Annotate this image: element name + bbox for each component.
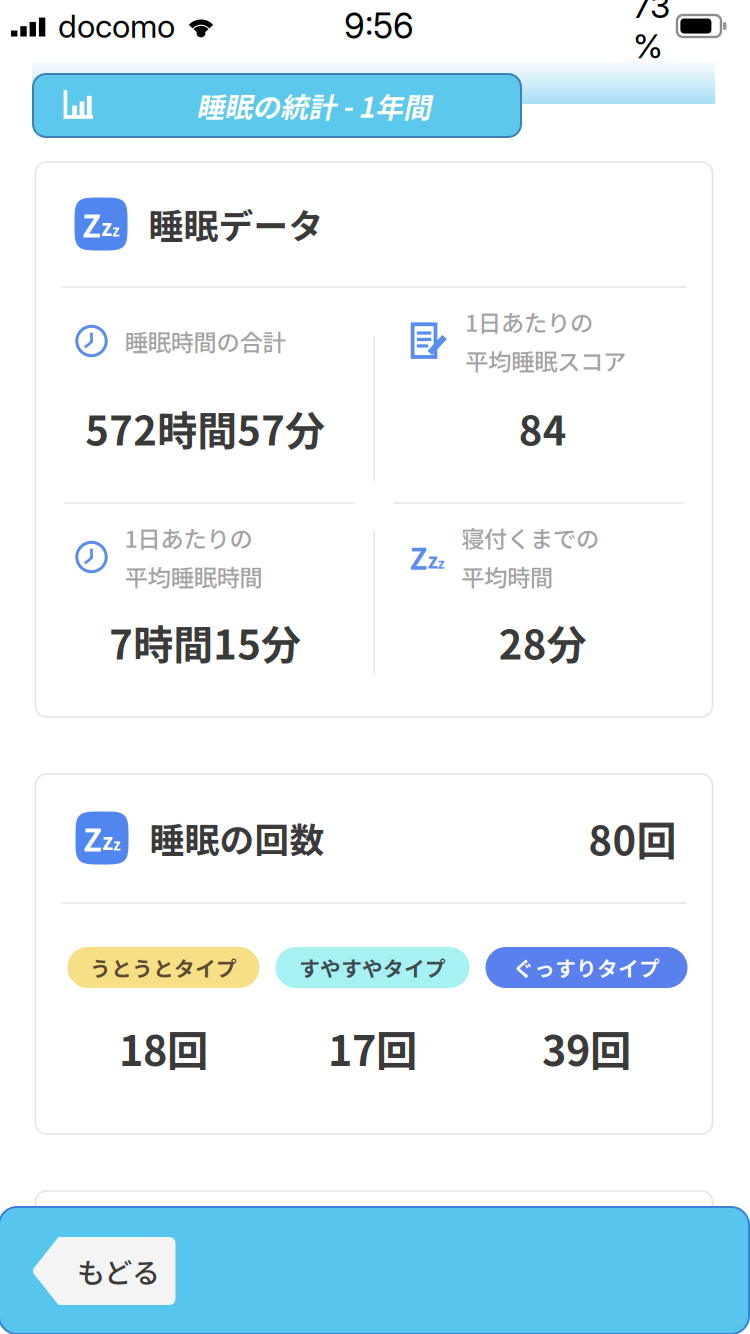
staticText: Z	[409, 536, 427, 578]
staticText: 1日あたりの	[124, 521, 252, 554]
staticText: z	[102, 825, 113, 856]
staticText: 睡眠の回数	[149, 813, 324, 863]
staticText: 572時間57分	[85, 399, 325, 457]
button[interactable]: もどる	[39, 1237, 183, 1305]
staticText: 1日あたりの	[465, 305, 593, 338]
staticText: 睡眠の統計 - 1年間	[196, 85, 431, 126]
staticText: 28分	[499, 613, 587, 671]
staticText: 73%	[633, 0, 670, 66]
staticText: 睡眠データ	[148, 199, 323, 249]
staticText: 9:56	[344, 5, 414, 47]
staticText: 平均時間	[461, 559, 553, 593]
staticText: うとうとタイプ	[90, 952, 237, 982]
staticText: z	[427, 545, 437, 574]
staticText: 17回	[328, 1018, 417, 1078]
staticText: もどる	[77, 1251, 160, 1291]
staticText: z	[113, 833, 121, 855]
staticText: ぐっすりタイプ	[513, 952, 660, 982]
staticText: 寝付くまでの	[461, 521, 599, 554]
staticText: 80回	[588, 809, 676, 867]
staticText: 睡眠時間の合計	[124, 324, 285, 358]
staticText: Z	[82, 201, 101, 246]
staticText: Z	[83, 815, 102, 860]
staticText: z	[112, 219, 120, 241]
staticText: z	[437, 552, 444, 573]
staticText: 39回	[542, 1018, 631, 1078]
button[interactable]: 睡眠の統計 - 1年間	[33, 74, 521, 137]
staticText: 84	[519, 399, 567, 457]
staticText: 18回	[119, 1018, 208, 1078]
staticText: docomo	[58, 7, 175, 45]
staticText: 平均睡眠スコア	[465, 343, 626, 377]
staticText: 7時間15分	[109, 613, 301, 671]
staticText: z	[101, 211, 112, 242]
staticText: 平均睡眠時間	[124, 559, 262, 593]
staticText: すやすやタイプ	[299, 952, 446, 982]
